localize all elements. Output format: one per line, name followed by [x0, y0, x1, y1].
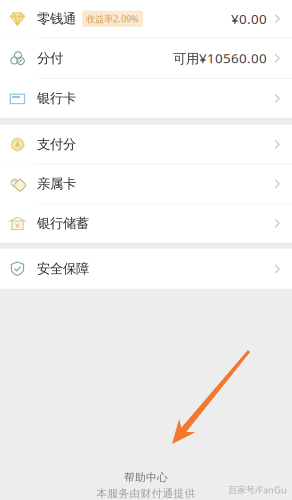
button[interactable]: 亲属卡: [0, 165, 292, 203]
staticText: 银行卡: [37, 90, 76, 107]
staticText: 收益率2.09%: [86, 13, 139, 25]
staticText: 可用¥10560.00: [173, 49, 267, 67]
staticText: 安全保障: [37, 261, 89, 277]
button[interactable]: 银行储蓄: [0, 204, 292, 243]
staticText: 零钱通: [37, 11, 76, 27]
staticText: 亲属卡: [37, 176, 76, 192]
staticText: 银行储蓄: [37, 215, 89, 231]
button[interactable]: 帮助中心: [0, 468, 292, 487]
button[interactable]: 支付分: [0, 125, 292, 164]
staticText: 支付分: [37, 136, 76, 153]
staticText: 帮助中心: [124, 471, 168, 484]
staticText: ¥0.00: [231, 10, 267, 28]
staticText: 百家号/FanGu: [228, 484, 287, 496]
button[interactable]: 银行卡: [0, 79, 292, 118]
staticText: 分付: [37, 50, 63, 66]
button[interactable]: 分付: [0, 38, 292, 78]
button[interactable]: 零钱通: [0, 0, 292, 37]
button[interactable]: 安全保障: [0, 249, 292, 289]
staticText: 本服务由财付通提供: [96, 487, 195, 500]
